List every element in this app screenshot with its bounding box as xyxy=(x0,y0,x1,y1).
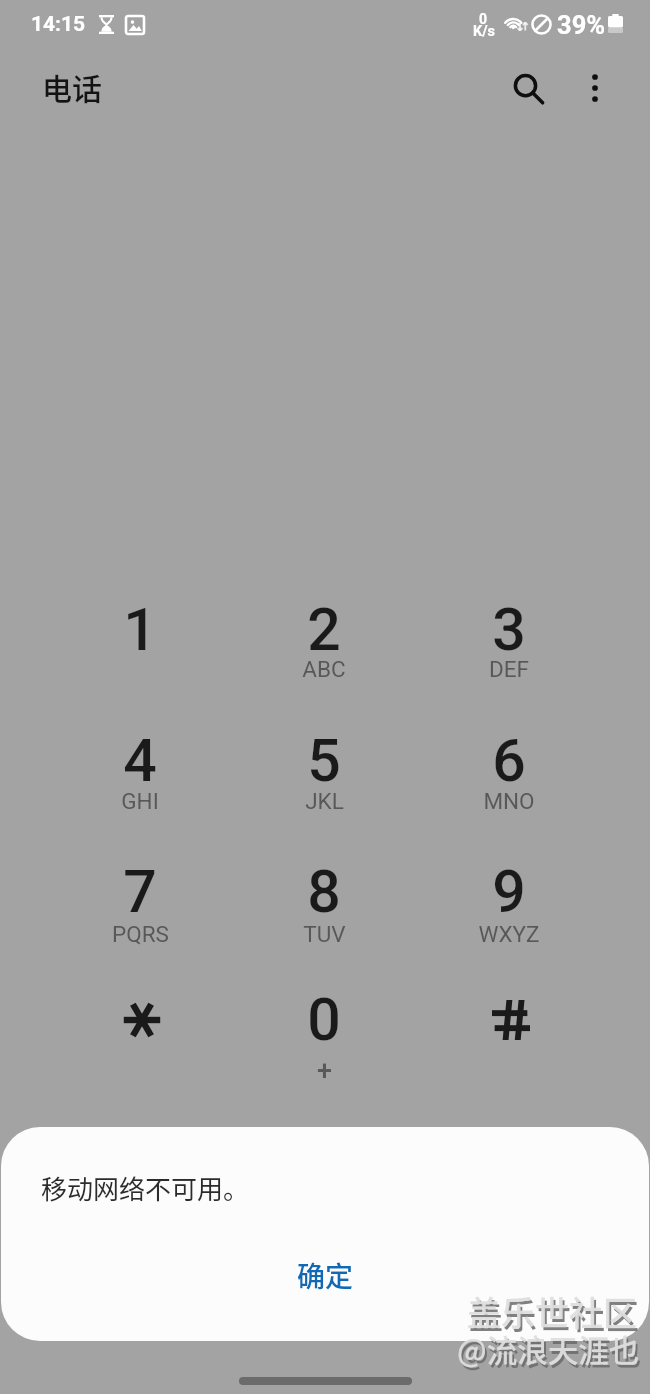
button[interactable]: 5 xyxy=(262,714,386,832)
button[interactable]: 0 xyxy=(262,973,386,1091)
button[interactable]: 确定 xyxy=(227,1240,423,1310)
button[interactable]: 3 xyxy=(447,583,571,701)
staticText: 7 xyxy=(123,857,157,926)
staticText: DEF xyxy=(489,656,529,682)
staticText: @流浪天涯也 xyxy=(457,1327,640,1371)
staticText: 盖乐世社区 xyxy=(467,1287,637,1336)
staticText: 0 xyxy=(479,11,488,27)
button[interactable]: 4 xyxy=(78,714,202,832)
staticText: @流浪天涯也 xyxy=(459,1330,642,1374)
staticText: 4 xyxy=(123,726,157,795)
staticText: ABC xyxy=(302,656,346,682)
button[interactable]: star xyxy=(78,973,202,1091)
button[interactable]: 9 xyxy=(447,845,571,963)
staticText: K/s xyxy=(473,23,496,40)
staticText: 确定 xyxy=(297,1255,354,1296)
button[interactable]: Search xyxy=(501,61,550,110)
staticText: 3 xyxy=(492,595,526,664)
staticText: GHI xyxy=(121,788,159,814)
staticText: 1 xyxy=(123,595,157,664)
button[interactable]: 8 xyxy=(262,845,386,963)
button[interactable]: 6 xyxy=(447,714,571,832)
staticText: 0 xyxy=(307,985,341,1054)
button[interactable]: 1 xyxy=(78,583,202,701)
staticText: 2 xyxy=(307,595,341,664)
staticText: TUV xyxy=(303,921,346,947)
button[interactable]: 2 xyxy=(262,583,386,701)
staticText: JKL xyxy=(305,788,344,814)
button[interactable]: 7 xyxy=(78,845,202,963)
staticText: 39% xyxy=(557,10,606,40)
staticText: 8 xyxy=(307,857,341,926)
staticText: 6 xyxy=(492,726,526,795)
staticText: 5 xyxy=(307,726,341,795)
staticText: 14:15 xyxy=(31,12,86,37)
staticText: 移动网络不可用。 xyxy=(41,1169,250,1207)
button[interactable]: pound xyxy=(447,973,571,1091)
staticText: 9 xyxy=(492,857,526,926)
staticText: 电话 xyxy=(42,65,102,108)
staticText: MNO xyxy=(483,788,535,814)
staticText: + xyxy=(317,1055,332,1087)
staticText: PQRS xyxy=(112,921,169,947)
staticText: WXYZ xyxy=(478,921,540,947)
button[interactable]: More options xyxy=(570,61,619,110)
staticText: 盖乐世社区 xyxy=(469,1290,639,1339)
